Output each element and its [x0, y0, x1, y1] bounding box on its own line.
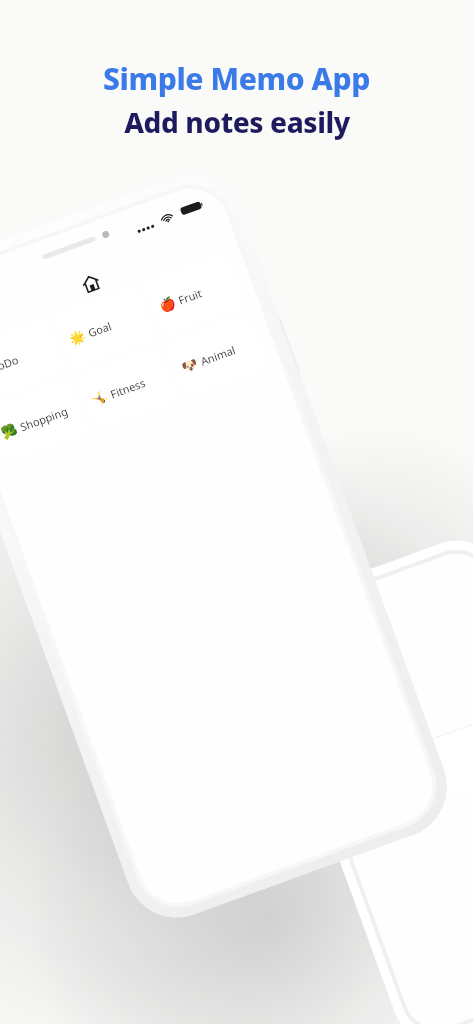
staticText: Fruit	[176, 285, 204, 307]
button[interactable]: 🍎	[143, 252, 246, 336]
button[interactable]: 🐶	[165, 313, 268, 398]
staticText: ToDo	[0, 352, 21, 375]
button[interactable]: 🤸	[75, 346, 178, 430]
button[interactable]: 🥦	[0, 379, 88, 463]
staticText: Add notes easily	[124, 103, 350, 141]
staticText: 🌟	[67, 327, 88, 347]
staticText: 🥦	[0, 421, 20, 441]
button[interactable]: ✍️	[0, 318, 65, 402]
staticText: Simple Memo App	[103, 58, 370, 99]
staticText: Goal	[86, 318, 114, 340]
staticText: 🍎	[157, 294, 178, 314]
staticText: 🤸	[89, 388, 110, 408]
staticText: Animal	[198, 342, 237, 369]
button[interactable]: Home	[74, 266, 107, 300]
staticText: Fitness	[108, 375, 148, 401]
button[interactable]: 🌟	[53, 285, 155, 369]
staticText: 🐶	[180, 356, 201, 375]
staticText: Shopping	[18, 403, 70, 434]
